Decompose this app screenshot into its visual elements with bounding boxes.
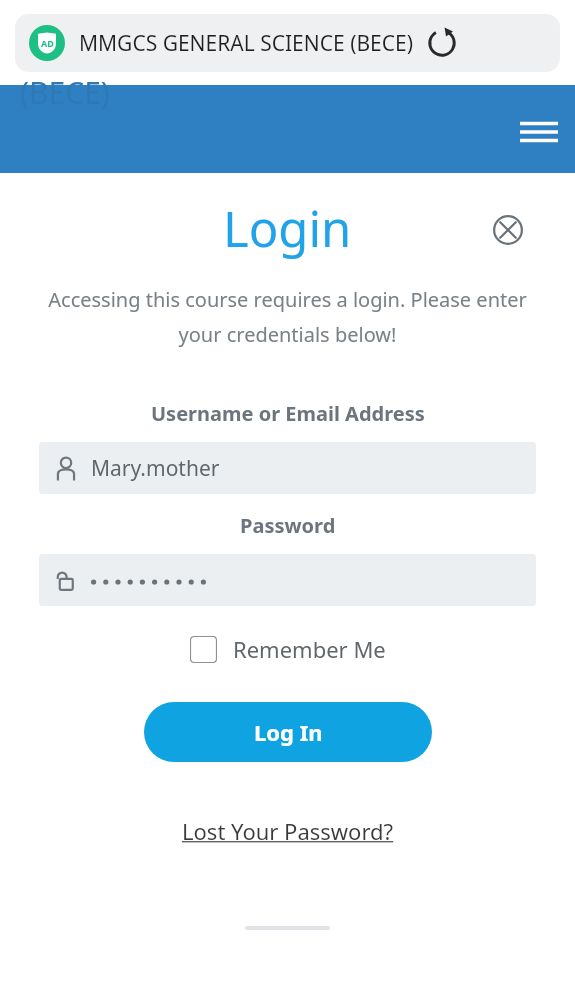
- staticText: MMGCS GENERAL SCIENCE (BECE): [79, 29, 414, 58]
- staticText: Username or Email Address: [151, 400, 425, 427]
- button[interactable]: Mary.mother: [39, 442, 536, 494]
- button[interactable]: AD: [15, 14, 560, 72]
- staticText: Remember Me: [233, 634, 386, 664]
- staticText: Log In: [254, 717, 323, 747]
- button[interactable]: Close: [485, 207, 531, 253]
- button[interactable]: Lost Your Password?: [176, 812, 400, 850]
- button[interactable]: [39, 554, 536, 606]
- button[interactable]: Menu: [513, 106, 565, 158]
- staticText: Mary.mother: [91, 454, 220, 483]
- button[interactable]: Log In: [144, 702, 432, 762]
- staticText: AD: [41, 37, 54, 49]
- staticText: Password: [240, 512, 336, 539]
- staticText: Lost Your Password?: [182, 816, 394, 846]
- button[interactable]: Remember Me: [184, 630, 392, 668]
- staticText: (BECE): [20, 72, 110, 113]
- staticText: Login: [223, 195, 352, 262]
- staticText: Accessing this course requires a login. …: [36, 286, 539, 348]
- button[interactable]: Reload: [422, 23, 462, 63]
